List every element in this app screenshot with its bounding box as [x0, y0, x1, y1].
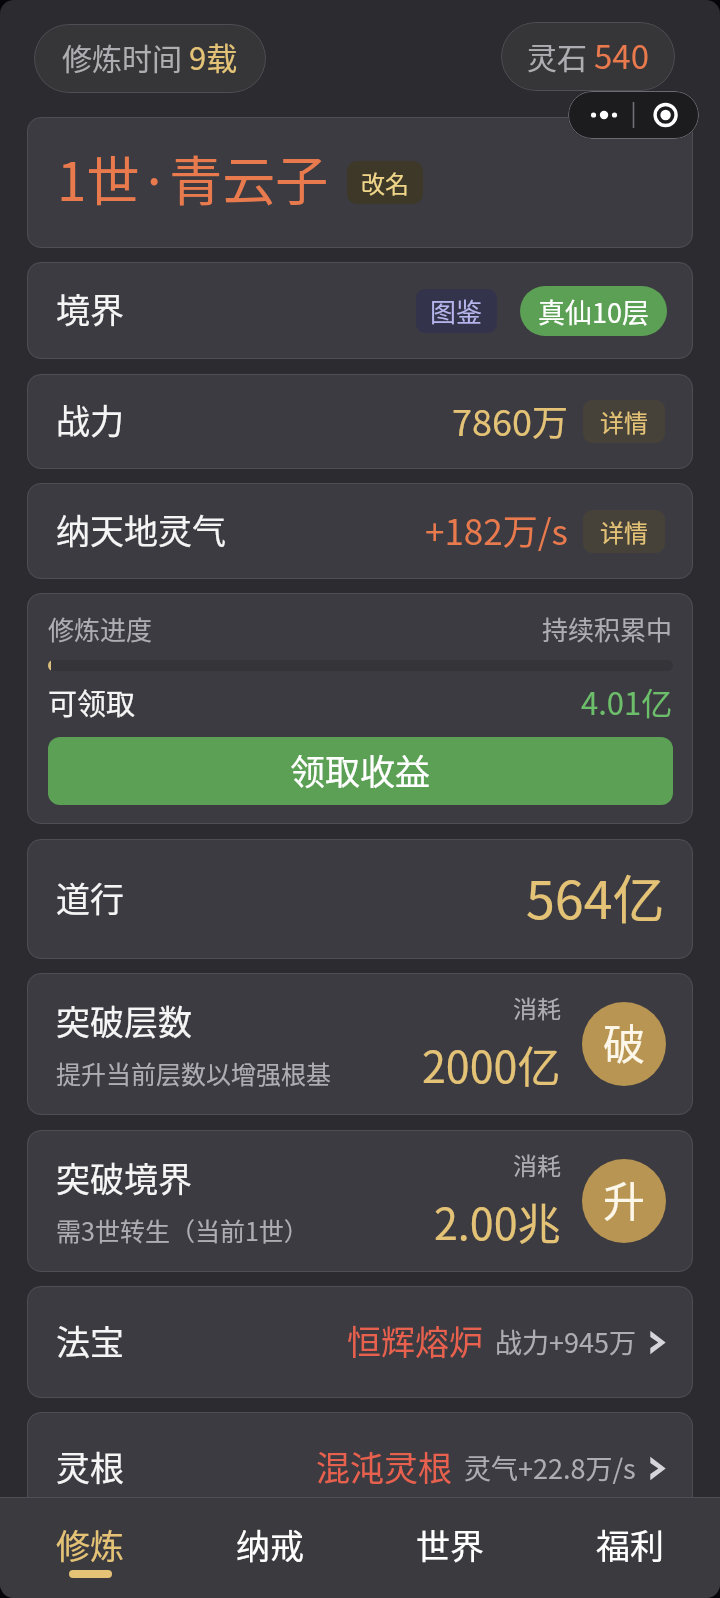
staticText: 持续积累中	[542, 610, 673, 648]
staticText: 纳戒	[236, 1520, 304, 1569]
staticText: 混沌灵根	[316, 1442, 452, 1491]
button[interactable]: 福利	[540, 1497, 720, 1598]
staticText: 修炼进度	[48, 610, 153, 648]
staticText: 提升当前层数以增强根基	[56, 1055, 332, 1091]
staticText: 图鉴	[430, 292, 483, 330]
staticText: 恒辉熔炉	[347, 1316, 483, 1365]
button[interactable]: 领取收益	[48, 737, 673, 805]
button[interactable]: 灵石	[501, 22, 675, 91]
staticText: 破	[603, 1011, 646, 1072]
staticText: 1世·青云子	[57, 140, 329, 217]
staticText: 道行	[56, 873, 124, 922]
staticText: 4.01亿	[581, 679, 673, 724]
staticText: +182万/s	[425, 504, 568, 555]
button[interactable]: 纳戒	[180, 1497, 360, 1598]
button[interactable]: 图鉴	[416, 289, 497, 333]
staticText: 改名	[361, 165, 409, 200]
button[interactable]: 真仙10层	[520, 286, 667, 336]
staticText: 可领取	[48, 681, 136, 723]
staticText: 564亿	[526, 859, 665, 934]
staticText: 突破层数	[56, 996, 192, 1045]
button[interactable]: 修炼	[0, 1497, 180, 1598]
staticText: 战力	[56, 395, 124, 444]
button[interactable]: 升	[582, 1159, 666, 1243]
button[interactable]: 世界	[360, 1497, 540, 1598]
staticText: 世界	[416, 1520, 484, 1569]
staticText: 灵气+22.8万/s	[464, 1448, 636, 1487]
staticText: 福利	[596, 1520, 664, 1569]
staticText: 9载	[189, 34, 238, 79]
staticText: 突破境界	[56, 1153, 192, 1202]
staticText: 详情	[600, 514, 648, 549]
button[interactable]: 破	[582, 1002, 666, 1086]
staticText: 2000亿	[422, 1033, 561, 1095]
staticText: 境界	[56, 284, 124, 333]
staticText: 修炼	[56, 1520, 124, 1569]
staticText: 需3世转生（当前1世）	[56, 1212, 309, 1248]
button[interactable]: 详情	[583, 400, 665, 443]
staticText: 7860万	[452, 394, 568, 446]
staticText: 灵根	[56, 1442, 124, 1491]
staticText: 540	[594, 31, 649, 79]
staticText: 消耗	[513, 990, 561, 1025]
staticText: 2.00兆	[434, 1190, 561, 1252]
button[interactable]: 法宝	[27, 1286, 693, 1398]
button[interactable]: 详情	[583, 510, 665, 553]
staticText: 消耗	[513, 1147, 561, 1182]
staticText: 灵石	[527, 34, 594, 77]
staticText: 修炼时间	[62, 35, 189, 78]
button[interactable]: 改名	[347, 161, 423, 204]
staticText: 升	[603, 1168, 646, 1229]
staticText: 真仙10层	[538, 292, 649, 331]
staticText: 详情	[600, 404, 648, 439]
staticText: 法宝	[56, 1316, 124, 1365]
button[interactable]: 灵根	[27, 1412, 693, 1524]
button[interactable]: 修炼时间	[34, 24, 266, 93]
staticText: 战力+945万	[495, 1322, 636, 1361]
staticText: 领取收益	[290, 744, 431, 795]
other: More options	[568, 91, 699, 139]
staticText: 纳天地灵气	[56, 505, 226, 554]
